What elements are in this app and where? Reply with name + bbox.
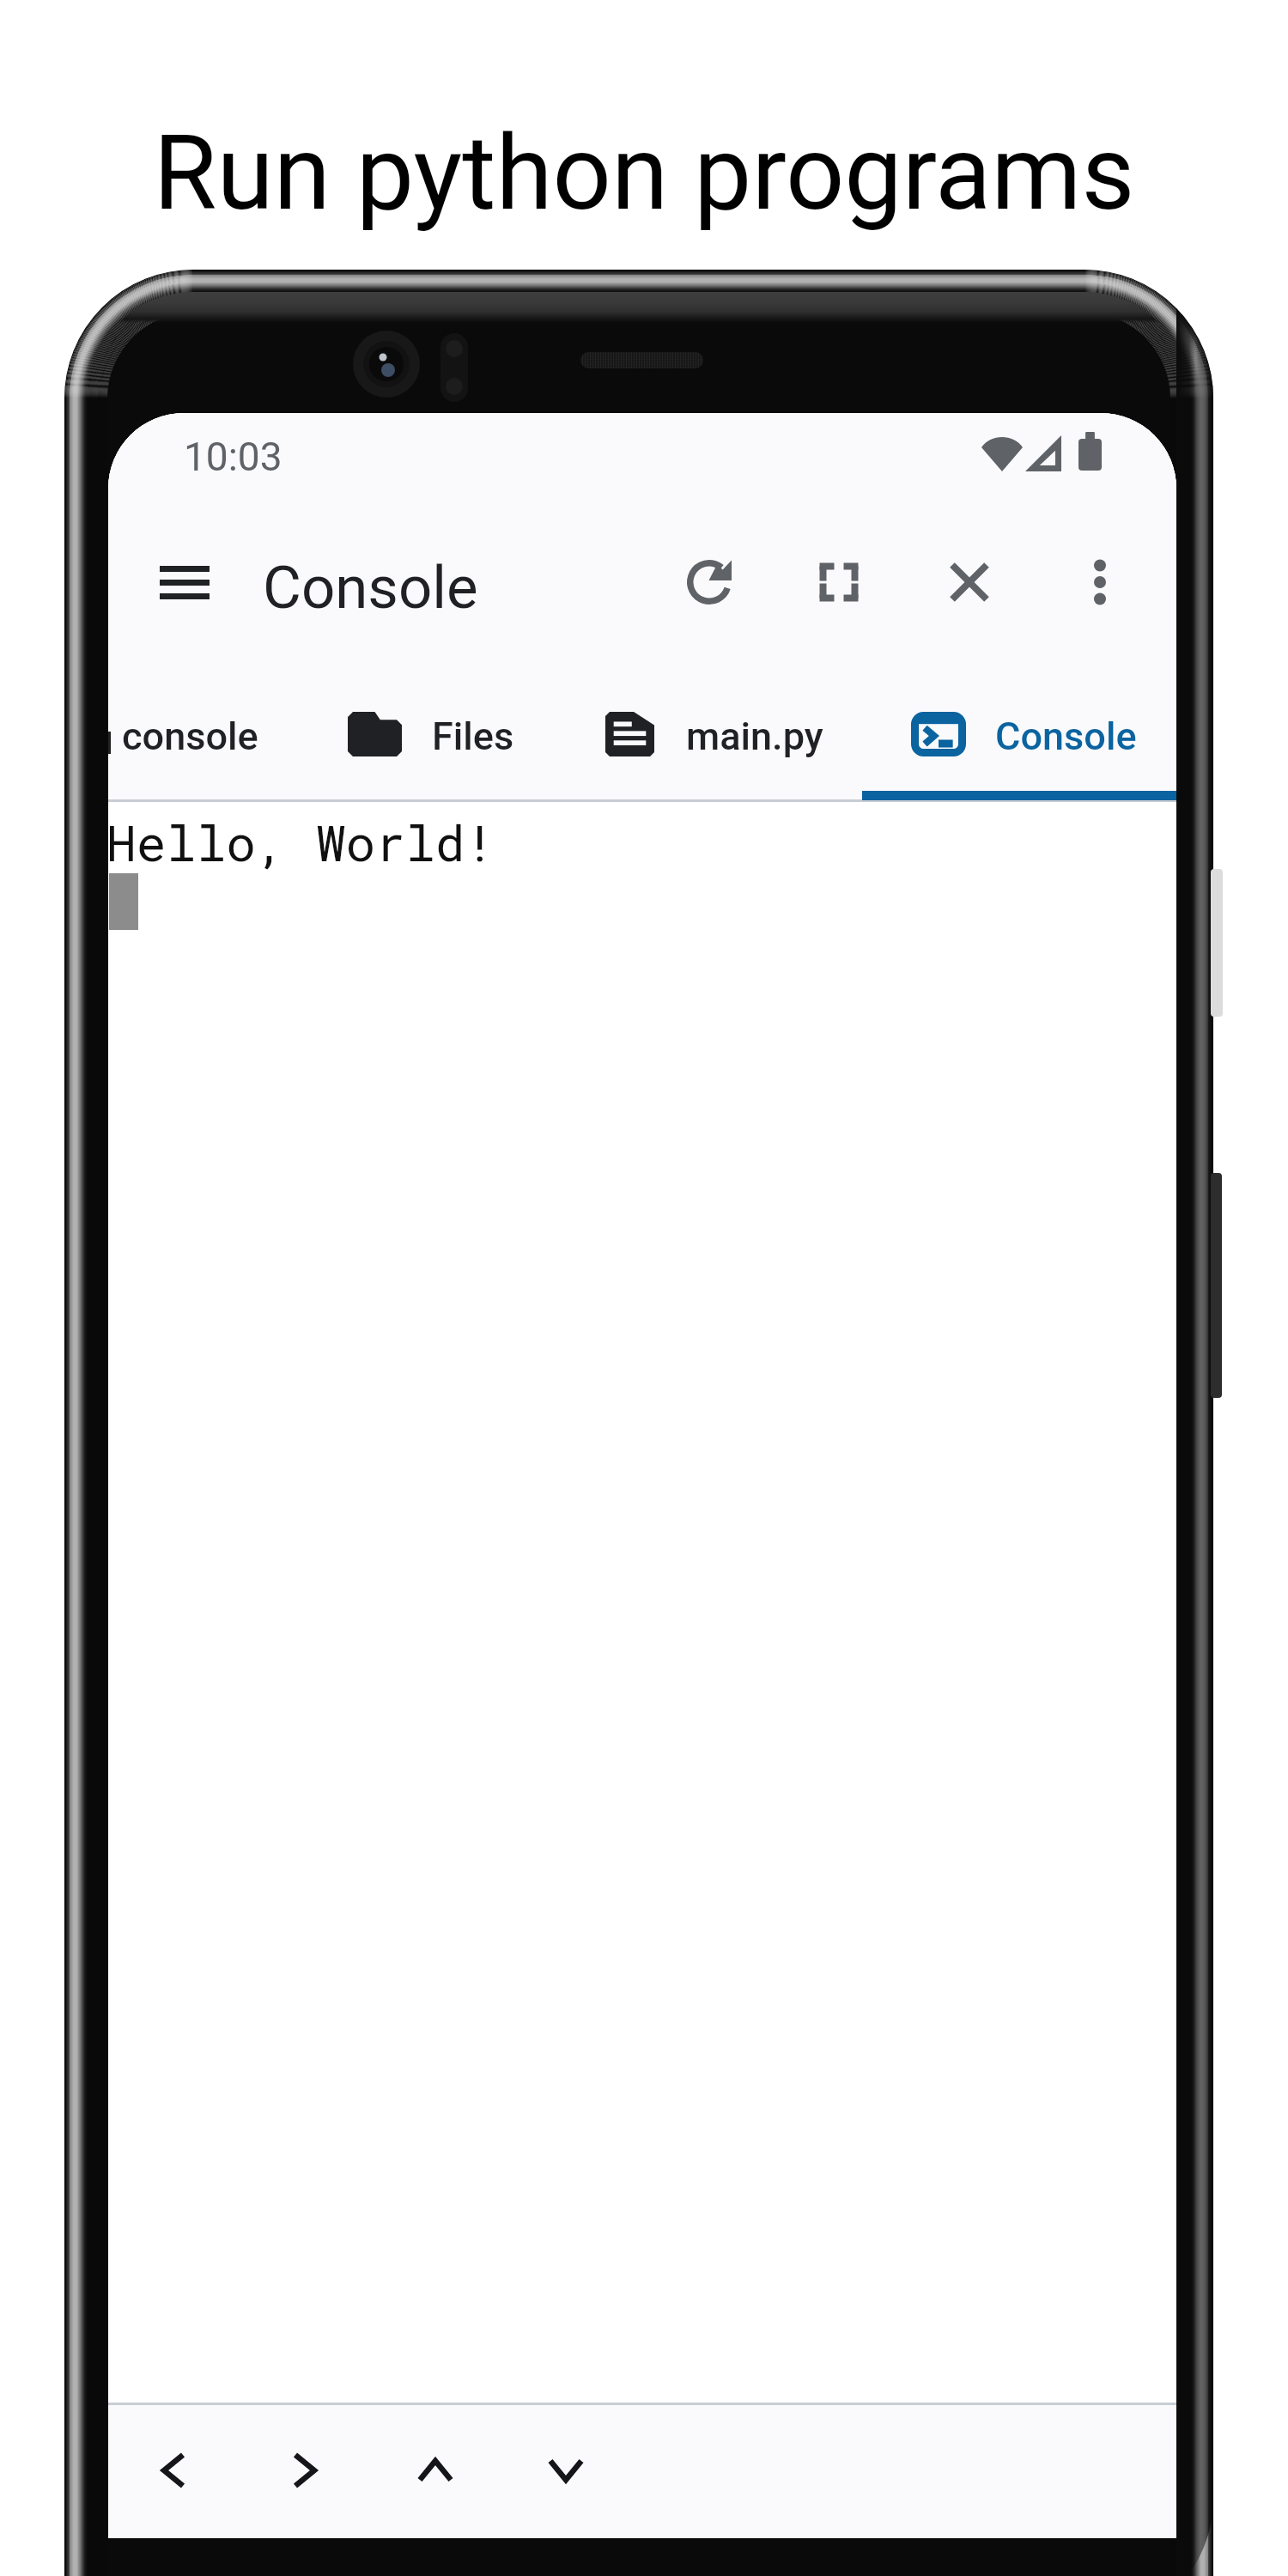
staticText: Console [263,553,478,623]
button[interactable]: Next [264,2429,346,2512]
button[interactable]: Close [928,541,1011,623]
button[interactable]: Scroll up [394,2429,477,2512]
button[interactable]: More options [1059,541,1141,623]
staticText: Hello, World! [108,809,495,874]
button[interactable]: Toggle fullscreen [798,541,880,623]
button[interactable]: Console [882,621,1167,797]
button[interactable]: Scroll down [525,2429,607,2512]
button[interactable]: Files [319,621,540,797]
button[interactable]: Open navigation menu [146,538,223,626]
staticText: Files [432,714,514,759]
button[interactable]: Previous [132,2429,215,2512]
button[interactable]: console [108,621,266,797]
staticText: 10:03 [184,434,283,480]
staticText: Run python programs [0,113,1288,234]
staticText: console [122,714,258,759]
button[interactable]: Refresh [668,541,750,623]
staticText: main.py [686,714,823,759]
button[interactable]: main.py [576,621,851,797]
staticText: Console [995,714,1137,759]
